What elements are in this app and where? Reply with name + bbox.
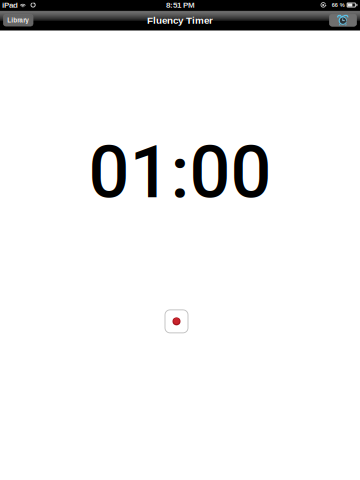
- staticText: Library: [7, 17, 29, 24]
- staticText: 66 %: [332, 2, 345, 8]
- button[interactable]: Library: [3, 14, 33, 26]
- button[interactable]: Set timer: [329, 14, 356, 26]
- staticText: Fluency Timer: [147, 15, 213, 26]
- staticText: 8:51 PM: [166, 0, 195, 9]
- staticText: 01:00: [88, 130, 271, 215]
- staticText: iPad: [2, 0, 18, 9]
- button[interactable]: Record: [165, 310, 188, 333]
